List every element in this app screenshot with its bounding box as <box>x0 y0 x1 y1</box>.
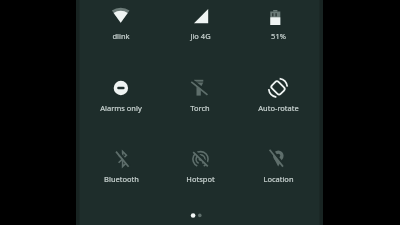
staticText: Jio 4G <box>190 31 211 41</box>
button[interactable]: Hotspot <box>161 146 239 188</box>
button[interactable]: dlink <box>82 3 160 45</box>
button[interactable]: Torch <box>161 75 239 117</box>
staticText: 51% <box>271 31 286 41</box>
button[interactable]: Bluetooth <box>82 146 160 188</box>
staticText: Alarms only <box>100 103 142 113</box>
staticText: Auto-rotate <box>258 103 299 113</box>
staticText: Bluetooth <box>104 174 139 184</box>
button[interactable]: Alarms only <box>82 75 160 117</box>
button[interactable]: Auto-rotate <box>239 75 317 117</box>
button[interactable]: Jio 4G <box>161 3 239 45</box>
staticText: dlink <box>112 31 130 41</box>
button[interactable]: Location <box>239 146 317 188</box>
staticText: Torch <box>190 103 210 113</box>
staticText: Location <box>263 174 294 184</box>
staticText: Hotspot <box>186 174 215 184</box>
button[interactable]: 51% <box>239 3 317 45</box>
